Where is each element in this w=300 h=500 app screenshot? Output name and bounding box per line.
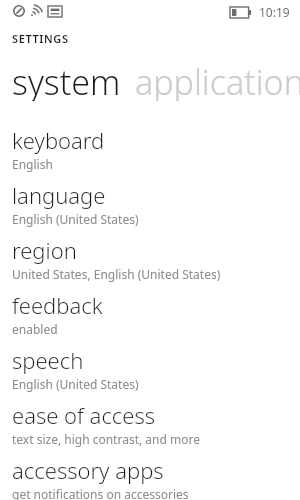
staticText: system (12, 59, 121, 101)
staticText: get notifications on accessories (12, 486, 189, 500)
staticText: speech (12, 345, 84, 375)
staticText: applications (135, 59, 300, 101)
staticText: English (United States) (12, 376, 139, 392)
staticText: region (12, 235, 77, 265)
button[interactable]: system (12, 59, 121, 101)
button[interactable]: language (0, 180, 300, 235)
staticText: SETTINGS (12, 31, 69, 46)
staticText: United States, English (United States) (12, 266, 221, 282)
other: Signal strength (48, 6, 62, 17)
other: Cellular data (13, 5, 25, 17)
staticText: 10:19 (259, 4, 290, 20)
button[interactable]: ease of access (0, 400, 300, 455)
staticText: accessory apps (12, 455, 164, 485)
staticText: feedback (12, 290, 103, 320)
staticText: enabled (12, 321, 58, 337)
button[interactable]: keyboard (0, 125, 300, 180)
staticText: language (12, 180, 106, 210)
staticText: text size, high contrast, and more (12, 431, 200, 447)
staticText: ease of access (12, 400, 156, 430)
staticText: English (12, 156, 53, 172)
other: Battery (230, 7, 251, 18)
button[interactable]: feedback (0, 290, 300, 345)
staticText: keyboard (12, 125, 105, 155)
button[interactable]: speech (0, 345, 300, 400)
button[interactable]: accessory apps (0, 455, 300, 500)
staticText: English (United States) (12, 211, 139, 227)
other: Wi-Fi (30, 5, 43, 17)
button[interactable]: applications (135, 59, 300, 101)
button[interactable]: region (0, 235, 300, 290)
